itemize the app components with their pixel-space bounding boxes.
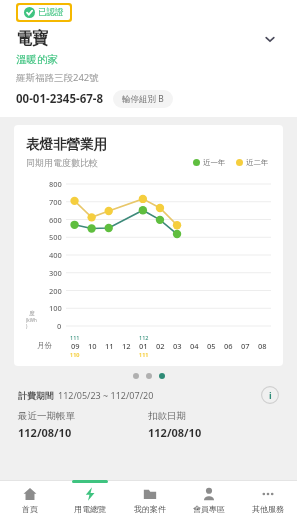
staticText: 500	[49, 232, 62, 242]
staticText: 輪停組別 B	[122, 93, 164, 105]
staticText: 其他服務	[252, 504, 284, 514]
staticText: 計費期間	[18, 390, 54, 401]
staticText: 扣款日期	[148, 410, 186, 422]
button[interactable]: 已認證	[18, 5, 70, 20]
staticText: 111	[139, 351, 149, 358]
staticText: 11	[105, 341, 114, 351]
staticText: 12	[122, 341, 131, 351]
button[interactable]: 我的案件	[120, 481, 179, 518]
button[interactable]: 用電總覽	[60, 481, 120, 518]
staticText: 我的案件	[134, 504, 166, 514]
staticText: 05	[207, 341, 216, 351]
staticText: 02	[156, 341, 165, 351]
staticText: 溫暖的家	[16, 53, 58, 66]
staticText: 09	[71, 341, 80, 351]
staticText: 300	[49, 268, 62, 278]
staticText: 01	[139, 341, 148, 351]
staticText: 400	[49, 250, 62, 260]
staticText: 會員專區	[193, 504, 225, 514]
staticText: 近一年	[203, 158, 226, 167]
button[interactable]: 其他服務	[238, 481, 297, 518]
staticText: 112	[139, 334, 149, 341]
staticText: 06	[224, 341, 233, 351]
button[interactable]: 說明	[261, 386, 279, 404]
staticText: 羅斯福路三段242號	[16, 71, 99, 84]
staticText: 112/05/23 ~ 112/07/20	[58, 389, 154, 401]
staticText: 200	[49, 286, 62, 296]
staticText: 同期用電度數比較	[26, 157, 98, 168]
staticText: 600	[49, 215, 62, 225]
button[interactable]: 會員專區	[179, 481, 238, 518]
staticText: (kWh)	[26, 317, 37, 329]
staticText: 近二年	[246, 158, 269, 167]
staticText: 800	[49, 179, 62, 189]
staticText: 700	[49, 197, 62, 207]
staticText: 112/08/10	[148, 425, 202, 440]
staticText: 最近一期帳單	[18, 410, 75, 422]
staticText: 00-01-2345-67-8	[16, 91, 104, 107]
staticText: i	[269, 389, 272, 401]
staticText: 電寶	[16, 29, 48, 49]
staticText: 0	[57, 321, 62, 331]
staticText: 100	[49, 303, 62, 313]
staticText: 110	[70, 351, 80, 358]
staticText: 03	[173, 341, 182, 351]
staticText: 度	[29, 310, 35, 317]
button[interactable]: 首頁	[0, 481, 60, 518]
staticText: 首頁	[22, 504, 38, 514]
staticText: 112/08/10	[18, 425, 72, 440]
staticText: 08	[258, 341, 267, 351]
staticText: 用電總覽	[74, 504, 106, 514]
staticText: 表燈非營業用	[26, 136, 107, 153]
staticText: 07	[241, 341, 250, 351]
button[interactable]: 輪停組別 B	[122, 93, 164, 105]
staticText: 10	[88, 341, 97, 351]
button[interactable]: 展開	[259, 28, 281, 50]
staticText: 111	[70, 334, 80, 341]
staticText: 04	[190, 341, 199, 351]
staticText: 月份	[37, 341, 52, 350]
staticText: 已認證	[38, 7, 64, 18]
